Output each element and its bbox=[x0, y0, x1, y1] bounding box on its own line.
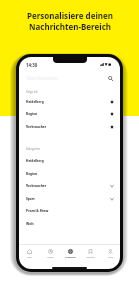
staticText: Region bbox=[26, 112, 38, 116]
button[interactable]: Verbraucher bbox=[19, 180, 120, 192]
button[interactable]: Heidelberg bbox=[19, 155, 120, 167]
button[interactable]: Verbraucher bbox=[19, 121, 120, 133]
button[interactable]: Start bbox=[19, 249, 40, 259]
button[interactable]: Merkliste bbox=[80, 249, 100, 259]
staticText: Promi & Show bbox=[26, 209, 49, 213]
staticText: Nachrichten-Bereich bbox=[29, 21, 111, 32]
button[interactable]: Aktuell bbox=[40, 249, 60, 259]
button[interactable]: Suche bbox=[106, 74, 115, 83]
staticText: Verbraucher bbox=[26, 184, 47, 188]
button[interactable]: Welt bbox=[19, 218, 120, 230]
staticText: Aktuell bbox=[47, 256, 54, 259]
button[interactable]: Heidelberg bbox=[19, 96, 120, 108]
button[interactable]: Sport bbox=[19, 193, 120, 205]
button[interactable]: Region bbox=[19, 168, 120, 180]
button[interactable]: Profil bbox=[100, 249, 120, 259]
staticText: Start bbox=[27, 256, 32, 259]
staticText: Personalisiere deinen bbox=[27, 10, 113, 21]
staticText: Profil bbox=[108, 256, 113, 259]
staticText: Heidelberg bbox=[26, 100, 44, 104]
staticText: Region bbox=[26, 172, 38, 176]
button[interactable]: Region bbox=[19, 108, 120, 120]
staticText: Kategorien bbox=[26, 147, 41, 151]
staticText: Welt bbox=[26, 222, 34, 226]
staticText: Merkliste bbox=[86, 256, 95, 259]
staticText: Kategorien bbox=[65, 256, 76, 259]
button[interactable]: Kategorien bbox=[60, 249, 80, 259]
staticText: Heidelberg bbox=[26, 159, 44, 163]
staticText: Folge ich bbox=[26, 90, 38, 94]
staticText: Verbraucher bbox=[26, 125, 47, 129]
staticText: Sport bbox=[26, 197, 35, 201]
staticText: 14:30 bbox=[26, 62, 38, 68]
staticText: Nachrichten bbox=[27, 75, 58, 82]
button[interactable]: Promi & Show bbox=[19, 205, 120, 217]
